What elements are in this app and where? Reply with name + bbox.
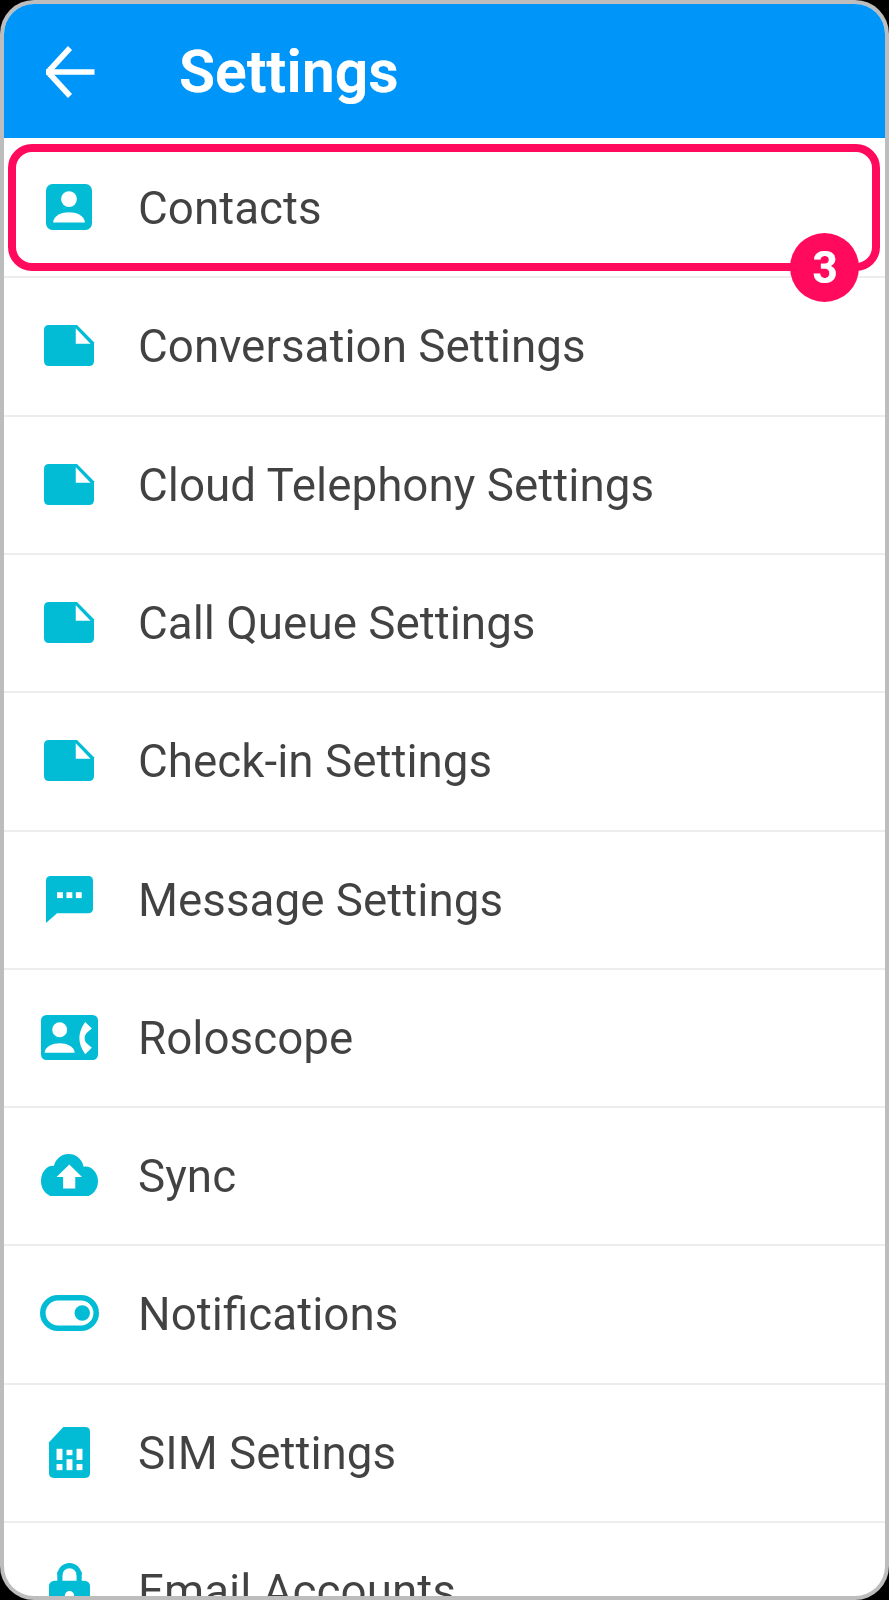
button[interactable]: Check-in Settings bbox=[4, 691, 885, 829]
button[interactable]: Cloud Telephony Settings bbox=[4, 415, 885, 553]
button[interactable]: Email Accounts bbox=[4, 1521, 885, 1596]
button[interactable]: 3 notifications bbox=[790, 233, 859, 302]
button[interactable]: Sync bbox=[4, 1106, 885, 1244]
staticText: Sync bbox=[138, 1150, 237, 1204]
button[interactable]: Message Settings bbox=[4, 830, 885, 968]
staticText: Roloscope bbox=[138, 1012, 354, 1066]
staticText: Settings bbox=[179, 37, 399, 106]
staticText: Cloud Telephony Settings bbox=[138, 459, 655, 513]
staticText: Notifications bbox=[138, 1288, 399, 1342]
button[interactable]: Back bbox=[14, 16, 125, 127]
staticText: Message Settings bbox=[138, 874, 504, 928]
staticText: Check-in Settings bbox=[138, 735, 493, 789]
button[interactable]: Call Queue Settings bbox=[4, 553, 885, 691]
button[interactable]: SIM Settings bbox=[4, 1383, 885, 1521]
button[interactable]: Notifications bbox=[4, 1244, 885, 1382]
button[interactable]: Contacts highlighted bbox=[8, 144, 880, 271]
staticText: SIM Settings bbox=[138, 1427, 397, 1481]
staticText: Contacts bbox=[138, 182, 322, 236]
staticText: Call Queue Settings bbox=[138, 597, 536, 651]
button[interactable]: Conversation Settings bbox=[4, 276, 885, 414]
button[interactable]: Roloscope bbox=[4, 968, 885, 1106]
staticText: Conversation Settings bbox=[138, 320, 586, 374]
button[interactable]: Contacts bbox=[4, 138, 885, 276]
staticText: Email Accounts bbox=[138, 1565, 456, 1596]
staticText: 3 bbox=[812, 242, 838, 294]
